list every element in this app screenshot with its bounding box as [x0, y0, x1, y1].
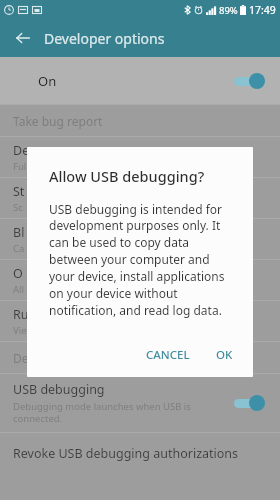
button[interactable]: St	[0, 178, 280, 218]
staticText: Take bug report	[13, 113, 103, 129]
staticText: Ru	[13, 306, 29, 323]
button[interactable]: USB debugging	[0, 374, 280, 432]
button[interactable]: On	[0, 57, 280, 104]
staticText: 89%	[219, 4, 238, 17]
staticText: OK	[216, 347, 233, 363]
button[interactable]: Toggle	[232, 393, 266, 413]
staticText: Ful	[13, 160, 27, 173]
staticText: O	[13, 265, 23, 282]
staticText: Debugging mode launches when USB is conn…	[13, 400, 220, 425]
staticText: Sc	[13, 201, 23, 214]
button[interactable]: O	[0, 260, 280, 300]
staticText: View and control currently running servi…	[13, 324, 209, 337]
staticText: All	[13, 283, 24, 296]
staticText: Debugging	[13, 350, 76, 366]
staticText: Allow USB debugging?	[49, 166, 205, 186]
staticText: On	[38, 72, 57, 90]
button[interactable]: Revoke USB debugging authorizations	[0, 433, 280, 473]
button[interactable]: Bl	[0, 219, 280, 259]
button[interactable]: OK	[208, 341, 241, 369]
button[interactable]: Toggle	[232, 71, 266, 91]
button[interactable]: De	[0, 137, 280, 177]
staticText: Ca	[13, 242, 25, 255]
staticText: Developer options	[44, 29, 165, 48]
staticText: Bl	[13, 224, 25, 241]
staticText: USB debugging	[13, 381, 105, 398]
staticText: CANCEL	[146, 347, 190, 363]
staticText: USB debugging is intended for developmen…	[49, 201, 235, 319]
staticText: De	[13, 142, 30, 159]
button[interactable]: Back	[10, 25, 36, 51]
button[interactable]: Ru	[0, 301, 280, 341]
button[interactable]: CANCEL	[138, 341, 198, 369]
staticText: Revoke USB debugging authorizations	[13, 445, 239, 462]
staticText: 17:49	[249, 3, 276, 17]
staticText: St	[13, 183, 25, 200]
